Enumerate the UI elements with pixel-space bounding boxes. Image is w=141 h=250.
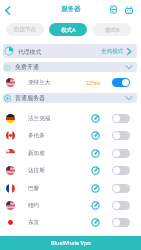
staticText: 全局模式 (101, 48, 124, 55)
button[interactable]: Speed test (91, 149, 100, 158)
button[interactable]: Connect (112, 149, 130, 158)
staticText: 免费开通 (15, 63, 39, 71)
button[interactable]: 亚特兰大 (0, 72, 141, 93)
button[interactable]: Connect (112, 166, 130, 175)
button[interactable]: Speed test (91, 166, 100, 175)
staticText: 达拉斯 (28, 167, 45, 174)
button[interactable]: Assistant (125, 6, 133, 14)
button[interactable]: Connect (112, 184, 130, 193)
button[interactable]: Speed test (91, 201, 100, 210)
staticText: 巴黎 (28, 185, 40, 192)
staticText: 东京 (28, 219, 40, 226)
button[interactable]: 纽约 (0, 197, 141, 214)
button[interactable]: Speed test (91, 218, 100, 227)
button[interactable]: 东京 (0, 214, 141, 231)
button[interactable]: 普通服务器 (3, 93, 137, 103)
button[interactable]: 免费开通 (3, 62, 137, 72)
staticText: 亚特兰大 (28, 79, 51, 86)
button[interactable]: Speed test (91, 184, 100, 193)
staticText: 法兰克福 (28, 115, 51, 122)
button[interactable]: 法兰克福 (0, 110, 141, 127)
button[interactable]: 代理模式 (3, 44, 137, 58)
button[interactable]: 自选节点 (6, 23, 44, 36)
button[interactable]: 模式A (49, 23, 87, 36)
button[interactable]: Connect (112, 131, 130, 140)
staticText: 服务器 (61, 5, 81, 13)
staticText: 代理模式 (18, 48, 42, 55)
button[interactable]: Nodes (110, 6, 117, 13)
staticText: 自选节点 (14, 26, 36, 33)
staticText: 模式A (61, 26, 76, 34)
button[interactable]: Connect (112, 218, 130, 227)
staticText: 227ms (86, 80, 100, 86)
staticText: 多伦多 (28, 132, 45, 139)
staticText: 普通服务器 (15, 94, 45, 102)
button[interactable]: 新加坡 (0, 145, 141, 162)
button[interactable]: 达拉斯 (0, 162, 141, 179)
button[interactable]: Connect (112, 201, 130, 210)
staticText: 新加坡 (28, 150, 45, 157)
button[interactable]: Disconnect (112, 78, 130, 87)
button[interactable]: Back (2, 3, 14, 15)
staticText: 纽约 (28, 202, 40, 209)
button[interactable]: 多伦多 (0, 127, 141, 144)
staticText: BlueWhale Vpn (51, 239, 91, 247)
button[interactable]: Speed test (91, 131, 100, 140)
button[interactable]: Connect (112, 114, 130, 123)
button[interactable]: 巴黎 (0, 180, 141, 197)
button[interactable]: BlueWhale Vpn (0, 236, 141, 250)
staticText: 模式B (105, 26, 120, 34)
button[interactable]: 模式B (93, 23, 131, 36)
button[interactable]: Speed test (91, 114, 100, 123)
